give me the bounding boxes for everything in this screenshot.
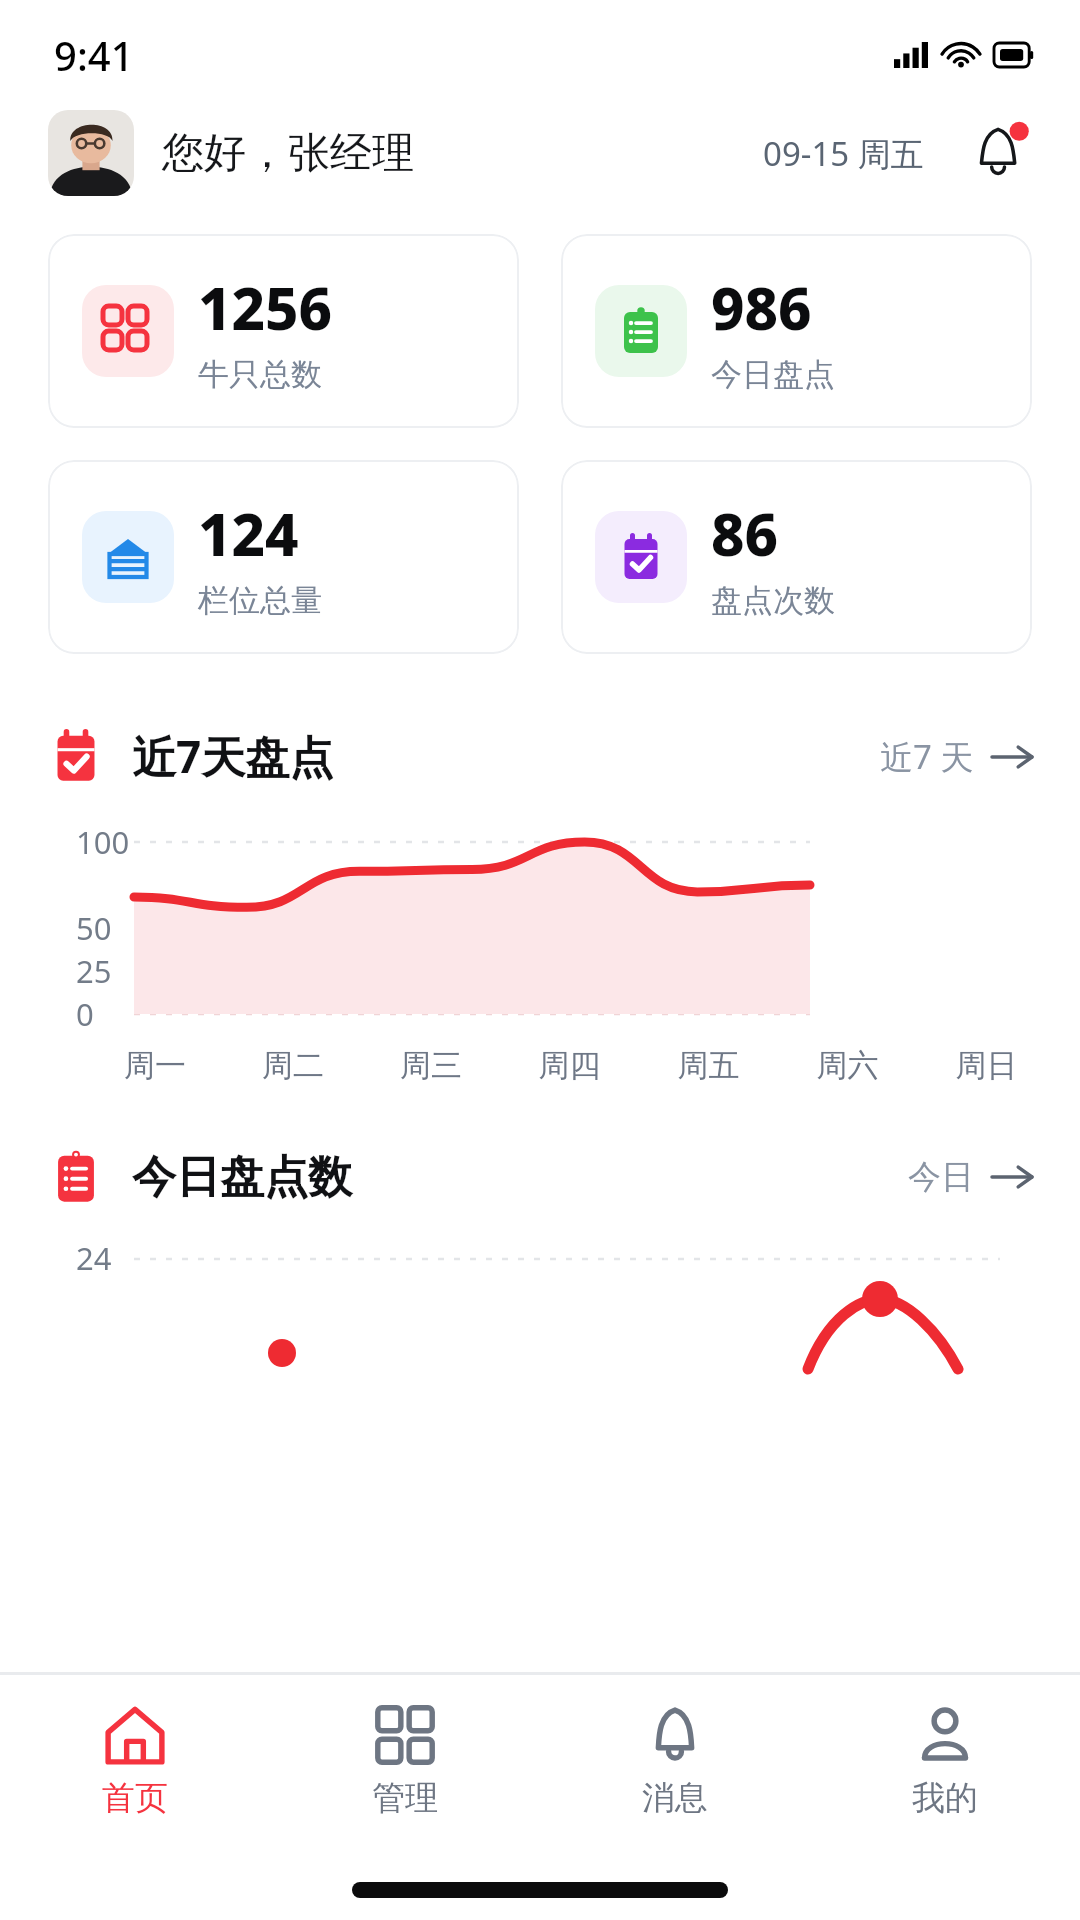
other: More <box>992 742 1032 772</box>
staticText: 1256 <box>198 268 333 347</box>
staticText: 周四 <box>500 1046 639 1085</box>
staticText: 我的 <box>912 1777 978 1819</box>
button[interactable]: 我的 <box>810 1675 1080 1847</box>
staticText: 100 <box>76 821 130 863</box>
button[interactable]: 管理 <box>270 1675 540 1847</box>
staticText: 周五 <box>639 1046 778 1085</box>
staticText: 25 <box>76 950 112 992</box>
button[interactable]: 09-15 周五 <box>763 131 924 176</box>
staticText: 近7天盘点 <box>132 726 334 786</box>
staticText: 今日 <box>908 1156 974 1198</box>
staticText: 今日盘点数 <box>132 1150 352 1205</box>
button[interactable]: Profile <box>48 110 134 196</box>
staticText: 盘点次数 <box>711 581 835 620</box>
staticText: 近7 天 <box>880 734 974 779</box>
staticText: 9:41 <box>54 28 134 82</box>
staticText: 50 <box>76 907 112 949</box>
staticText: 周一 <box>86 1046 224 1085</box>
button[interactable]: 86 <box>561 460 1032 654</box>
button[interactable]: 近7 天 <box>880 734 1032 779</box>
staticText: 牛只总数 <box>198 355 322 394</box>
staticText: 今日盘点 <box>711 355 835 394</box>
staticText: 86 <box>711 494 779 573</box>
staticText: 0 <box>76 993 94 1035</box>
button[interactable]: 986 <box>561 234 1032 428</box>
staticText: 管理 <box>372 1777 438 1819</box>
other: More <box>992 1162 1032 1192</box>
staticText: 栏位总量 <box>198 581 322 620</box>
staticText: 986 <box>711 268 812 347</box>
button[interactable]: 1256 <box>48 234 519 428</box>
button[interactable]: 今日 <box>908 1156 1032 1198</box>
button[interactable]: 消息 <box>540 1675 810 1847</box>
staticText: 周六 <box>778 1046 917 1085</box>
staticText: 周二 <box>224 1046 362 1085</box>
staticText: 您好，张经理 <box>162 127 414 180</box>
staticText: 周日 <box>917 1046 1056 1085</box>
button[interactable]: 124 <box>48 460 519 654</box>
staticText: 周三 <box>362 1046 500 1085</box>
staticText: 124 <box>198 494 299 573</box>
button[interactable]: Notifications <box>968 121 1032 185</box>
button[interactable]: 首页 <box>0 1675 270 1847</box>
staticText: 消息 <box>642 1777 708 1819</box>
staticText: 24 <box>76 1237 112 1279</box>
staticText: 首页 <box>102 1777 168 1819</box>
